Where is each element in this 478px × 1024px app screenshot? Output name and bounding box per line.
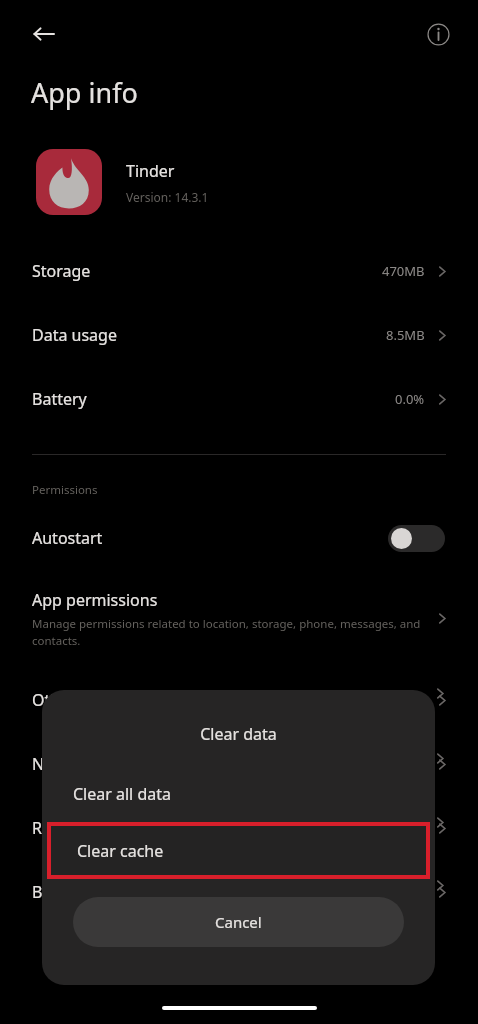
staticText: Clear data <box>42 723 435 745</box>
staticText: Cancel <box>215 912 262 932</box>
staticText: Storage <box>32 260 91 282</box>
staticText: Notifications <box>32 753 128 775</box>
staticText: Permissions <box>32 482 98 498</box>
button[interactable]: Storage <box>0 239 478 303</box>
button[interactable]: Restrict data usage <box>0 796 478 860</box>
staticText: 470MB <box>382 262 425 280</box>
button[interactable]: Cancel <box>73 897 404 947</box>
button[interactable]: Data usage <box>0 303 478 367</box>
staticText: App permissions <box>32 589 158 611</box>
staticText: Manage permissions related to location, … <box>32 616 421 648</box>
staticText: Version: 14.3.1 <box>126 189 209 205</box>
button[interactable]: Info <box>416 12 460 56</box>
staticText: Battery saver <box>32 881 132 903</box>
staticText: Restrict data usage <box>32 817 176 839</box>
staticText: Clear all data <box>73 783 171 805</box>
button[interactable]: Battery <box>0 367 478 431</box>
staticText: App info <box>31 74 138 111</box>
staticText: Other permissions <box>32 689 172 711</box>
staticText: 8.5MB <box>386 326 425 344</box>
staticText: Battery <box>32 388 87 410</box>
button[interactable]: Back <box>22 12 66 56</box>
staticText: Autostart <box>32 527 103 549</box>
button[interactable]: Battery saver <box>0 860 478 924</box>
staticText: 0.0% <box>395 390 425 408</box>
staticText: Tinder <box>126 160 175 182</box>
button[interactable]: App permissions <box>0 582 478 654</box>
button[interactable]: Autostart toggle <box>388 525 445 552</box>
staticText: Data usage <box>32 324 117 346</box>
button[interactable]: Notifications <box>0 732 478 796</box>
staticText: Clear cache <box>77 840 164 862</box>
button[interactable]: Autostart <box>0 514 478 562</box>
button[interactable]: Clear all data <box>42 770 435 817</box>
button[interactable]: Clear cache <box>51 826 426 875</box>
button[interactable]: Other permissions <box>0 668 478 732</box>
